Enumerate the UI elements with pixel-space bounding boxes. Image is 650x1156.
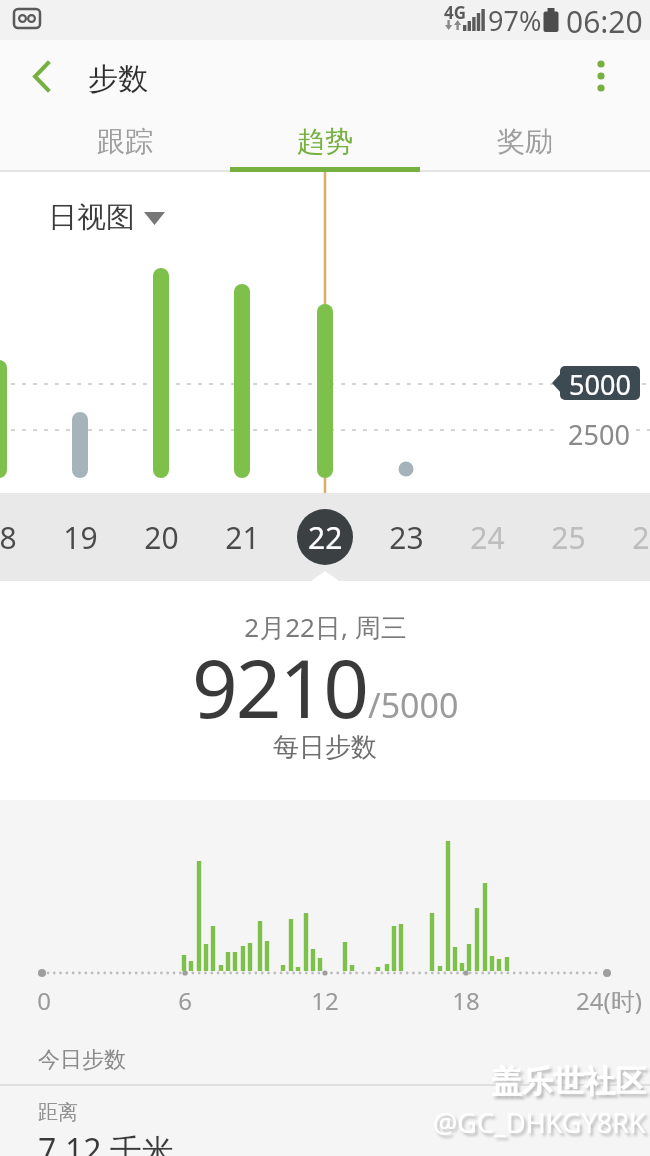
button[interactable]: 22 [297,509,353,565]
staticText: 4G [444,1,467,24]
staticText: 今日步数 [38,1046,126,1074]
staticText: 步数 [88,60,148,98]
staticText: 0 [37,984,51,1017]
staticText: 22 [308,517,343,558]
staticText: 12 [311,984,339,1017]
staticText: 7.12 千米 [38,1128,174,1156]
staticText: 奖励 [497,124,553,159]
staticText: 26 [632,517,650,558]
staticText: 97% [488,2,542,39]
button[interactable]: 趋势 [225,110,425,172]
staticText: /5000 [368,682,459,728]
staticText: 距离 [38,1100,78,1125]
button[interactable] [20,52,68,100]
staticText: 21 [225,517,260,558]
staticText: 每日步数 [273,731,377,764]
button[interactable]: 跟踪 [25,110,225,172]
staticText: 25 [551,517,586,558]
staticText: 2月22日, 周三 [244,609,407,645]
staticText: 06:20 [566,1,643,42]
staticText: 19 [63,517,98,558]
staticText: 18 [0,517,17,558]
staticText: 24 [470,517,505,558]
staticText: @GC_DHKGY8RK [433,1104,646,1141]
staticText: 9210 [192,632,368,722]
staticText: 盖乐世社区 [491,1062,646,1101]
staticText: 趋势 [297,124,353,159]
staticText: 6 [178,984,192,1017]
staticText: 5000 [569,366,631,403]
staticText: 18 [452,984,480,1017]
button[interactable]: 奖励 [425,110,625,172]
staticText: 20 [144,517,179,558]
staticText: 跟踪 [97,124,153,159]
button[interactable] [578,52,622,100]
staticText: 24(时) [576,984,642,1017]
staticText: 23 [389,517,424,558]
staticText: 2500 [568,416,630,453]
button[interactable] [40,196,180,238]
staticText: 日视图 [48,199,135,236]
